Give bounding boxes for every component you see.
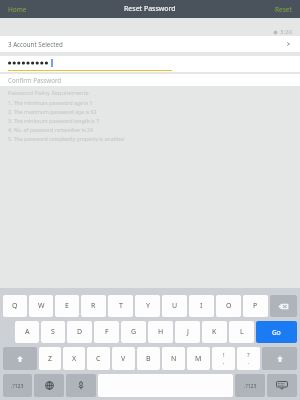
button[interactable]: A [15, 321, 39, 343]
button[interactable]: Numbers [235, 374, 265, 397]
button[interactable]: V [112, 347, 135, 370]
staticText: Reset [275, 5, 292, 14]
staticText: 5. The password complexity property is e… [8, 135, 125, 142]
staticText: Reset Password [124, 4, 176, 14]
button[interactable]: P [243, 295, 268, 317]
button[interactable]: S [41, 321, 65, 343]
button[interactable]: U [162, 295, 187, 317]
button[interactable]: L [229, 321, 254, 343]
staticText: F [105, 327, 109, 337]
button[interactable]: Change keyboard [34, 374, 64, 397]
staticText: P [253, 301, 258, 311]
staticText: G [131, 327, 137, 337]
staticText: .?123 [11, 382, 24, 389]
staticText: V [121, 354, 126, 364]
staticText: I [200, 301, 203, 311]
button[interactable]: Numbers [3, 374, 32, 397]
button[interactable]: Hide keyboard [267, 374, 297, 397]
staticText: Go [272, 328, 281, 337]
staticText: O [226, 301, 232, 311]
staticText: E [65, 301, 69, 311]
button[interactable]: Shift [262, 347, 297, 370]
staticText: J [187, 327, 189, 337]
staticText: L [240, 327, 244, 337]
staticText: U [172, 301, 178, 311]
button[interactable]: 3 Account Selected [0, 36, 300, 52]
staticText: N [171, 354, 177, 364]
button[interactable]: N [162, 347, 185, 370]
button[interactable]: T [108, 295, 133, 317]
staticText: 3:20 [280, 28, 292, 36]
button[interactable]: K [202, 321, 227, 343]
button[interactable] [0, 56, 300, 70]
staticText: Password Policy Requirements: [8, 89, 90, 97]
staticText: S [51, 327, 55, 337]
staticText: Home [8, 5, 27, 14]
button[interactable]: Dictate [66, 374, 96, 397]
staticText: M [195, 354, 202, 364]
staticText: R [91, 301, 96, 311]
button[interactable]: Z [39, 347, 61, 370]
button[interactable]: ! [212, 347, 235, 370]
staticText: 4. No. of password remember is 24 [8, 126, 93, 133]
button[interactable]: Y [135, 295, 160, 317]
button[interactable]: B [137, 347, 160, 370]
button[interactable]: J [175, 321, 200, 343]
staticText: A [25, 327, 30, 337]
button[interactable]: Q [3, 295, 27, 317]
button[interactable]: R [81, 295, 106, 317]
button[interactable]: F [94, 321, 119, 343]
button[interactable]: E [55, 295, 79, 317]
button[interactable]: O [216, 295, 241, 317]
button[interactable]: X [63, 347, 85, 370]
staticText: W [38, 301, 45, 311]
button[interactable]: D [67, 321, 92, 343]
button[interactable]: Shift [3, 347, 37, 370]
button[interactable]: G [121, 321, 146, 343]
staticText: T [119, 301, 123, 311]
staticText: 1. The minimum password age is 1 [8, 99, 93, 106]
staticText: K [212, 327, 217, 337]
staticText: .?123 [244, 382, 257, 389]
button[interactable]: I [189, 295, 214, 317]
staticText: H [158, 327, 164, 337]
button[interactable]: W [29, 295, 53, 317]
staticText: 3 Account Selected [8, 40, 63, 48]
staticText: Y [146, 301, 150, 311]
staticText: Q [12, 301, 18, 311]
staticText: C [96, 354, 101, 364]
button[interactable]: Home [0, 2, 35, 17]
staticText: ? [247, 351, 250, 359]
staticText: , [223, 359, 225, 366]
staticText: ! [223, 351, 225, 359]
staticText: 3. The minimum password length is 7 [8, 117, 100, 124]
button[interactable]: C [87, 347, 110, 370]
button[interactable]: Backspace [270, 295, 297, 317]
staticText: D [77, 327, 83, 337]
staticText: . [248, 359, 250, 366]
staticText: B [146, 354, 151, 364]
button[interactable]: Confirm Password [0, 74, 300, 86]
button[interactable]: M [187, 347, 210, 370]
button[interactable]: H [148, 321, 173, 343]
staticText: Z [48, 354, 53, 364]
button[interactable]: Go [256, 321, 297, 343]
staticText: 2. The maximum password age is 62 [8, 108, 97, 115]
staticText: Confirm Password [8, 76, 62, 84]
button[interactable]: ? [237, 347, 260, 370]
button[interactable]: Reset [267, 2, 300, 17]
staticText: X [72, 354, 77, 364]
